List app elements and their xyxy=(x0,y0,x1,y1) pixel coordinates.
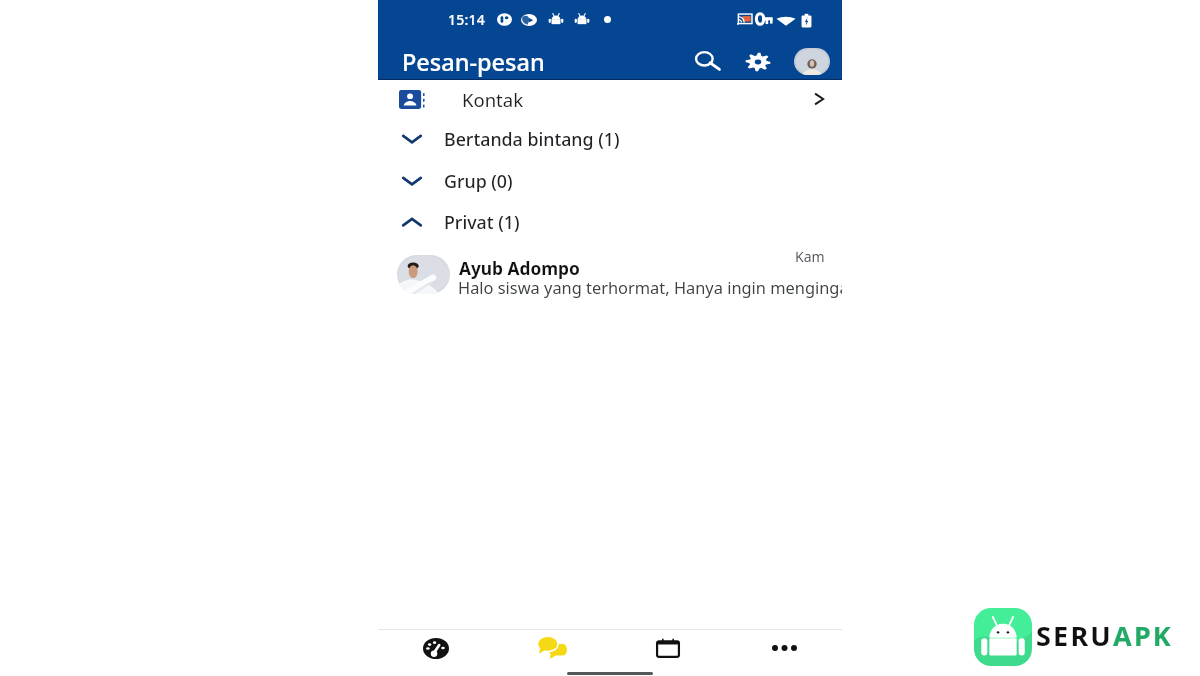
button[interactable]: Privat (1) xyxy=(378,201,842,243)
button[interactable]: Ayub Adompo xyxy=(378,245,842,303)
button[interactable]: Account xyxy=(793,46,831,76)
staticText: SERU xyxy=(1036,617,1113,654)
button[interactable]: More xyxy=(726,630,842,666)
button[interactable]: Messages xyxy=(494,630,610,666)
staticText: Grup (0) xyxy=(444,169,513,193)
button[interactable]: Dashboard xyxy=(378,630,494,666)
staticText: 15:14 xyxy=(448,10,485,29)
button[interactable]: Calendar xyxy=(610,630,726,666)
button[interactable]: Grup (0) xyxy=(378,160,842,202)
staticText: APK xyxy=(1113,617,1173,654)
staticText: Ayub Adompo xyxy=(459,257,580,281)
staticText: Kam xyxy=(795,247,825,266)
staticText: Privat (1) xyxy=(444,210,520,234)
staticText: Bertanda bintang (1) xyxy=(444,127,620,151)
staticText: Halo siswa yang terhormat, Hanya ingin m… xyxy=(458,276,842,298)
staticText: Pesan-pesan xyxy=(402,46,545,78)
button[interactable]: Bertanda bintang (1) xyxy=(378,118,842,160)
button[interactable]: Search xyxy=(686,38,730,82)
button[interactable]: Kontak xyxy=(378,78,842,120)
staticText: Kontak xyxy=(462,87,524,112)
button[interactable]: Settings xyxy=(736,40,780,84)
